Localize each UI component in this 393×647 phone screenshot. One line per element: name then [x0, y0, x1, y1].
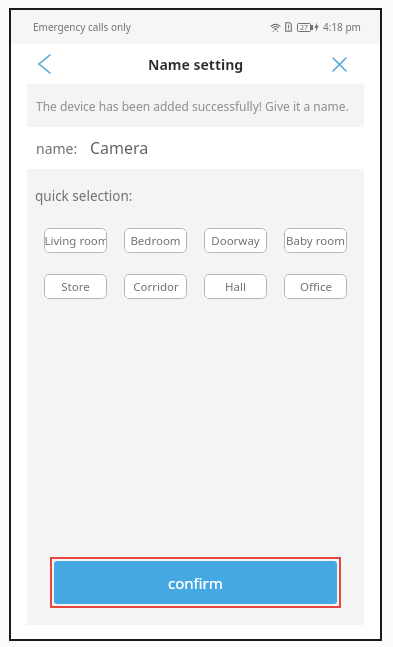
button[interactable]: Bedroom — [124, 228, 187, 253]
staticText: Living room — [44, 233, 107, 249]
staticText: Name setting — [148, 55, 244, 74]
button[interactable]: Back — [25, 45, 63, 83]
button[interactable]: Corridor — [124, 274, 187, 299]
staticText: Corridor — [133, 279, 179, 295]
staticText: Doorway — [211, 233, 260, 249]
staticText: The device has been added successfully! … — [36, 98, 349, 114]
button[interactable]: Hall — [204, 274, 267, 299]
staticText: Emergency calls only — [33, 20, 131, 34]
staticText: Camera — [90, 137, 149, 159]
staticText: 4:18 pm — [323, 20, 361, 34]
button[interactable]: name: — [27, 127, 364, 169]
button[interactable]: Close — [321, 46, 357, 82]
button[interactable]: Living room — [44, 228, 107, 253]
staticText: quick selection: — [35, 187, 133, 205]
button[interactable]: Baby room — [284, 228, 347, 253]
staticText: confirm — [168, 573, 223, 593]
button[interactable]: confirm — [54, 561, 337, 604]
staticText: name: — [36, 139, 78, 158]
staticText: Hall — [225, 279, 246, 295]
staticText: Store — [61, 279, 90, 295]
staticText: Office — [300, 279, 332, 295]
button[interactable]: Doorway — [204, 228, 267, 253]
staticText: 27 — [300, 23, 309, 32]
staticText: Baby room — [286, 233, 345, 249]
button[interactable]: Store — [44, 274, 107, 299]
staticText: Bedroom — [130, 233, 181, 249]
button[interactable]: Office — [284, 274, 347, 299]
